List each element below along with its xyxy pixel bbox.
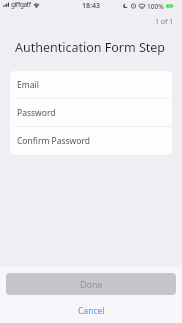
staticText: 18:43: [82, 1, 100, 11]
staticText: 100%: [147, 2, 164, 11]
staticText: Cancel: [78, 305, 105, 317]
button[interactable]: Password: [10, 99, 172, 127]
staticText: 1 of 1: [155, 17, 174, 27]
staticText: giffgaff: [11, 0, 31, 9]
button[interactable]: Confirm Password: [10, 127, 172, 155]
button[interactable]: Done: [6, 273, 176, 295]
staticText: Confirm Password: [17, 135, 90, 147]
staticText: Password: [17, 107, 56, 119]
button[interactable]: Email: [10, 71, 172, 99]
staticText: Email: [17, 79, 39, 91]
button[interactable]: Cancel: [0, 295, 182, 323]
staticText: Done: [80, 278, 103, 290]
staticText: Authentication Form Step: [15, 39, 166, 56]
